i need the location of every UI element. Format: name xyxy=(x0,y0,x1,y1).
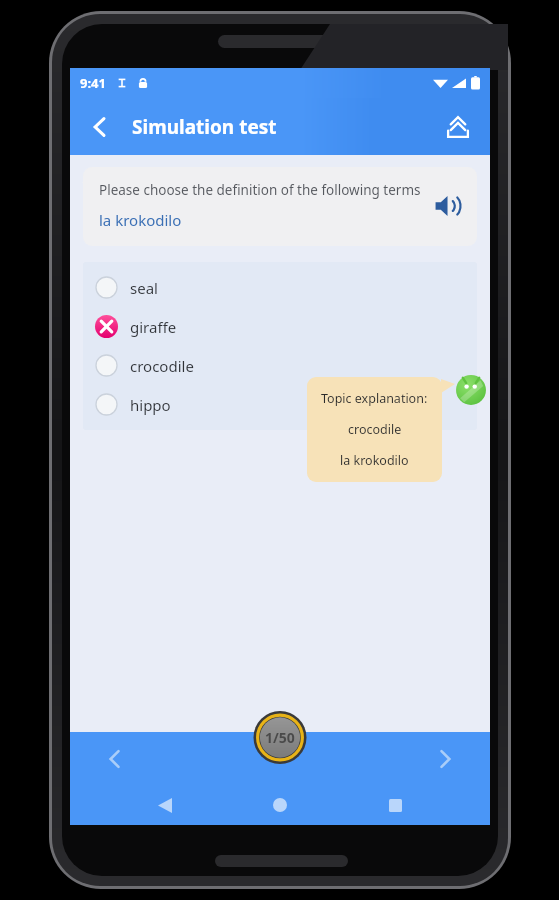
staticText: 1/50 xyxy=(265,728,295,747)
button[interactable]: giraffe xyxy=(83,307,477,346)
staticText: seal xyxy=(130,278,158,298)
staticText: crocodile xyxy=(348,421,402,438)
button[interactable]: Home xyxy=(260,785,300,825)
button[interactable]: Previous question xyxy=(92,736,138,782)
staticText: Simulation test xyxy=(132,114,277,140)
staticText: hippo xyxy=(130,395,171,415)
button[interactable]: crocodile xyxy=(83,346,477,385)
button[interactable]: hippo xyxy=(83,385,477,424)
staticText: giraffe xyxy=(130,317,177,337)
staticText: la krokodilo xyxy=(99,210,182,230)
button[interactable]: Recent apps xyxy=(375,785,415,825)
button[interactable]: Topic explanation: xyxy=(307,377,442,482)
button[interactable]: seal xyxy=(83,268,477,307)
button[interactable]: Upload xyxy=(436,105,480,149)
button[interactable]: Back xyxy=(145,785,185,825)
staticText: Please choose the definition of the foll… xyxy=(99,181,421,199)
staticText: Topic explanation: xyxy=(321,390,428,407)
staticText: 9:41 xyxy=(80,74,106,92)
button[interactable]: Please choose the definition of the foll… xyxy=(83,167,477,246)
button[interactable]: Play pronunciation xyxy=(427,186,467,226)
button[interactable]: Question 1 of 50 xyxy=(251,711,309,764)
staticText: crocodile xyxy=(130,356,194,376)
button[interactable]: Next question xyxy=(422,736,468,782)
button[interactable]: Back xyxy=(78,105,122,149)
staticText: la krokodilo xyxy=(340,452,409,469)
